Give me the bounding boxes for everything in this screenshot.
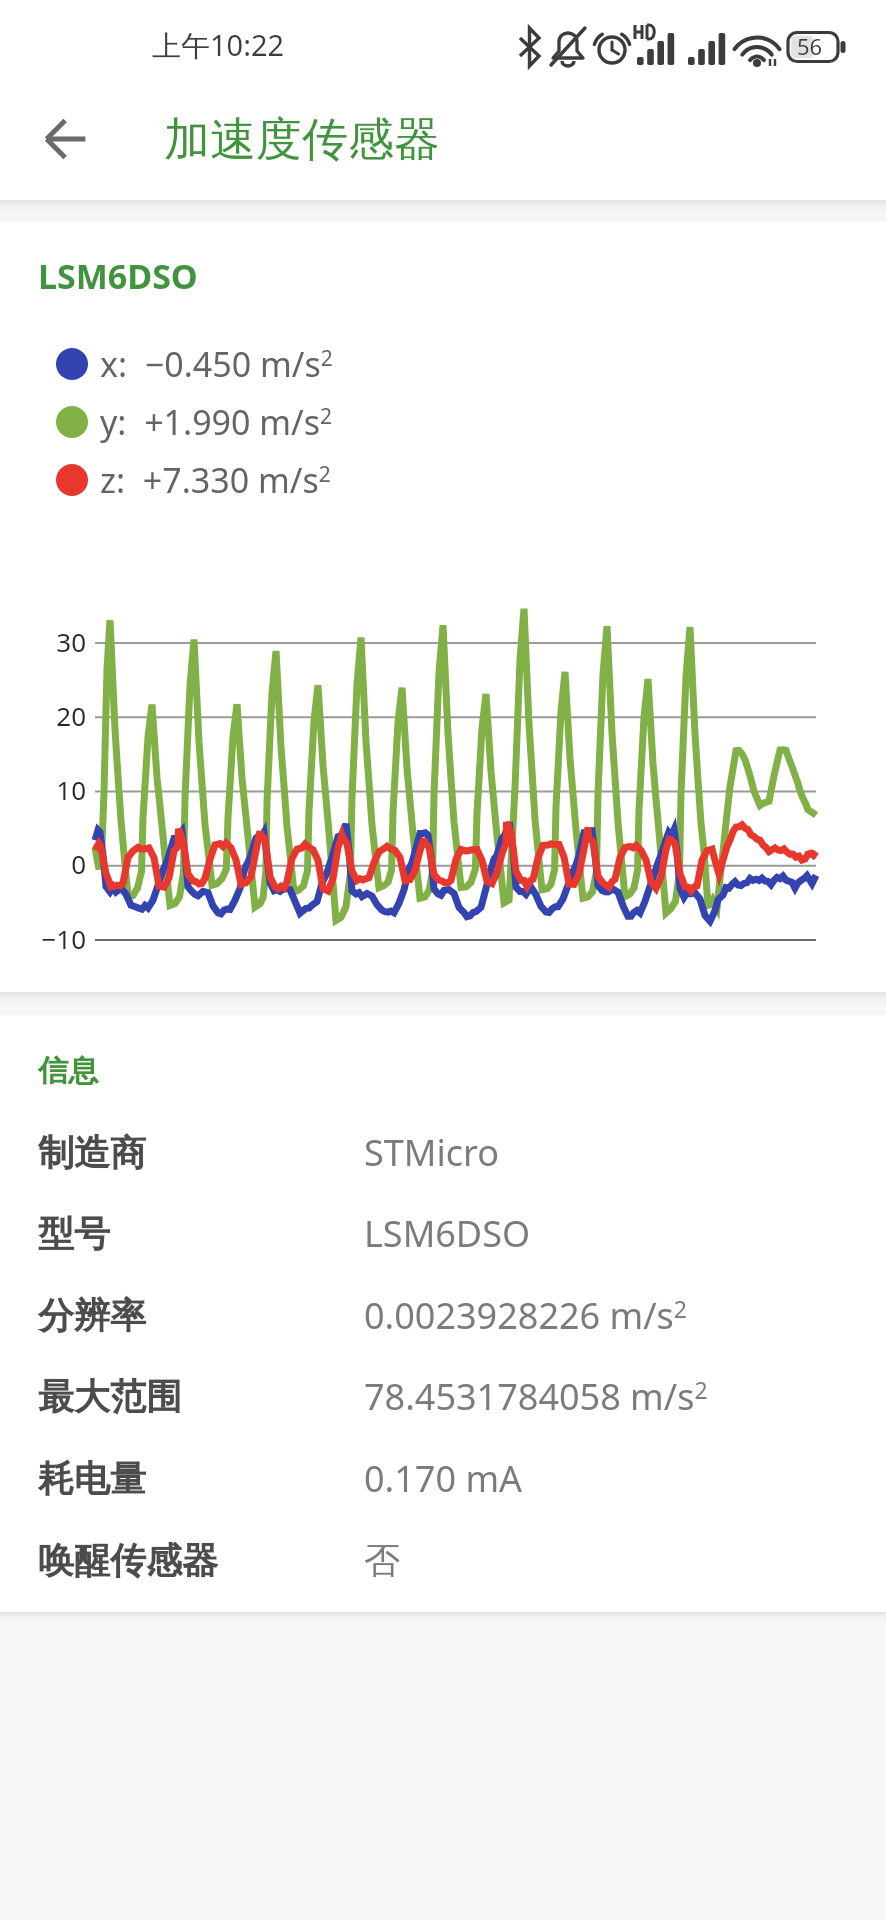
staticText: 加速度传感器 [164,111,440,169]
button[interactable]: 最大范围 [0,1356,886,1437]
staticText: 唤醒传感器 [38,1538,364,1583]
staticText: x: −0.450 m/s2 [100,341,333,387]
staticText: LSM6DSO [364,1209,531,1258]
staticText: 型号 [38,1211,364,1256]
staticText: 10 [14,772,86,807]
staticText: 最大范围 [38,1374,364,1419]
staticText: 0.170 mA [364,1454,523,1503]
button[interactable]: 型号 [0,1193,886,1274]
staticText: 56 [797,31,823,61]
staticText: z: +7.330 m/s2 [100,457,331,503]
staticText: 信息 [38,1052,98,1090]
staticText: 上午10:22 [152,25,285,65]
staticText: 否 [364,1538,400,1583]
button[interactable]: 分辨率 [0,1275,886,1356]
button[interactable]: 耗电量 [0,1438,886,1519]
button[interactable]: Back [26,99,106,179]
button[interactable]: 制造商 [0,1112,886,1193]
staticText: 分辨率 [38,1293,364,1338]
button[interactable]: LSM6DSO [0,222,886,992]
staticText: LSM6DSO [38,253,198,299]
button[interactable]: 唤醒传感器 [0,1520,886,1601]
staticText: STMicro [364,1128,499,1177]
staticText: 78.4531784058 m/s2 [364,1372,708,1421]
staticText: −10 [14,921,86,956]
staticText: 耗电量 [38,1456,364,1501]
staticText: 20 [14,698,86,733]
staticText: y: +1.990 m/s2 [100,399,333,445]
staticText: 0 [14,846,86,881]
staticText: 制造商 [38,1130,364,1175]
staticText: 0.0023928226 m/s2 [364,1291,687,1340]
staticText: 30 [14,624,86,659]
